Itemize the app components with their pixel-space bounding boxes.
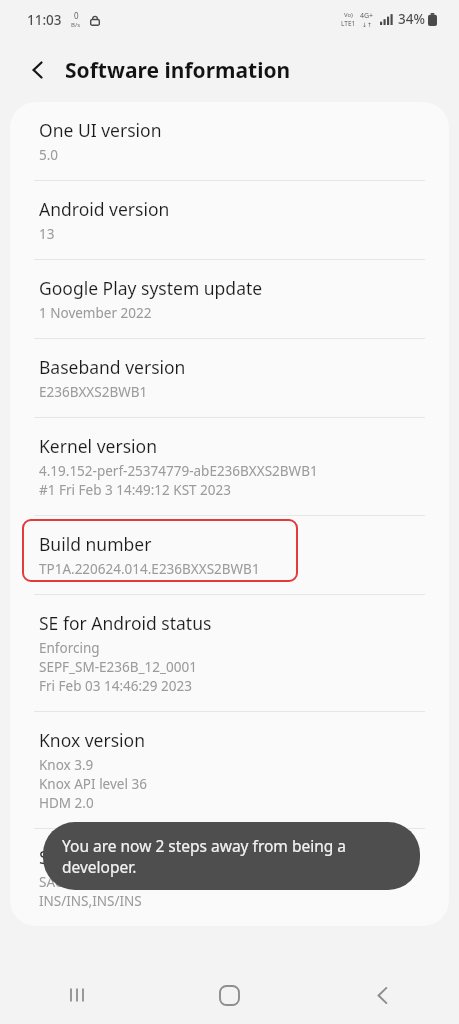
staticText: 11:03	[27, 11, 62, 29]
staticText: You are now 2 steps away from being a de…	[62, 835, 398, 878]
staticText: One UI version	[39, 118, 162, 142]
staticText: LTE1	[341, 19, 356, 28]
button[interactable]: Home	[153, 966, 306, 1024]
staticText: E236BXXS2BWB1	[39, 383, 148, 401]
button[interactable]: Knox version	[10, 712, 449, 829]
staticText: 4.19.152-perf-25374779-abE236BXXS2BWB1	[39, 462, 318, 480]
button[interactable]: SE for Android status	[10, 595, 449, 712]
staticText: ↓↑	[362, 21, 373, 28]
button[interactable]: Back	[306, 966, 459, 1024]
staticText: Fri Feb 03 14:46:29 2023	[39, 677, 192, 695]
staticText: Software information	[65, 56, 291, 85]
staticText: Android version	[39, 197, 170, 221]
button[interactable]: Back	[14, 46, 62, 94]
staticText: Google Play system update	[39, 276, 263, 300]
staticText: Knox API level 36	[39, 775, 147, 793]
button[interactable]: Baseband version	[10, 339, 449, 418]
staticText: 5.0	[39, 146, 59, 164]
staticText: 4G+	[360, 11, 374, 21]
staticText: Kernel version	[39, 434, 157, 458]
staticText: SEPF_SM-E236B_12_0001	[39, 658, 197, 676]
staticText: HDM 2.0	[39, 794, 94, 812]
staticText: Knox version	[39, 728, 145, 752]
staticText: 13	[39, 225, 55, 243]
button[interactable]: One UI version	[10, 102, 449, 181]
staticText: TP1A.220624.014.E236BXXS2BWB1	[39, 560, 260, 578]
staticText: 34%	[398, 10, 425, 28]
button[interactable]: Build number	[10, 516, 449, 595]
button[interactable]: Service provider software version	[10, 829, 449, 926]
staticText: SE for Android status	[39, 611, 212, 635]
staticText: Service provider software version	[39, 845, 313, 869]
button[interactable]: Kernel version	[10, 418, 449, 516]
staticText: SAOMC_SM-E236B_ODM_INS_13_0012	[39, 873, 281, 891]
staticText: INS/INS,INS/INS	[39, 892, 142, 910]
button[interactable]: Android version	[10, 181, 449, 260]
staticText: Baseband version	[39, 355, 186, 379]
staticText: Build number	[39, 532, 152, 556]
staticText: 0	[74, 10, 79, 21]
button[interactable]: Google Play system update	[10, 260, 449, 339]
staticText: Knox 3.9	[39, 756, 94, 774]
button[interactable]: Recents	[0, 966, 153, 1024]
staticText: #1 Fri Feb 3 14:49:12 KST 2023	[39, 481, 231, 499]
staticText: Vo)	[344, 11, 353, 19]
staticText: Enforcing	[39, 639, 100, 657]
staticText: 1 November 2022	[39, 304, 152, 322]
staticText: B/s	[71, 21, 81, 29]
